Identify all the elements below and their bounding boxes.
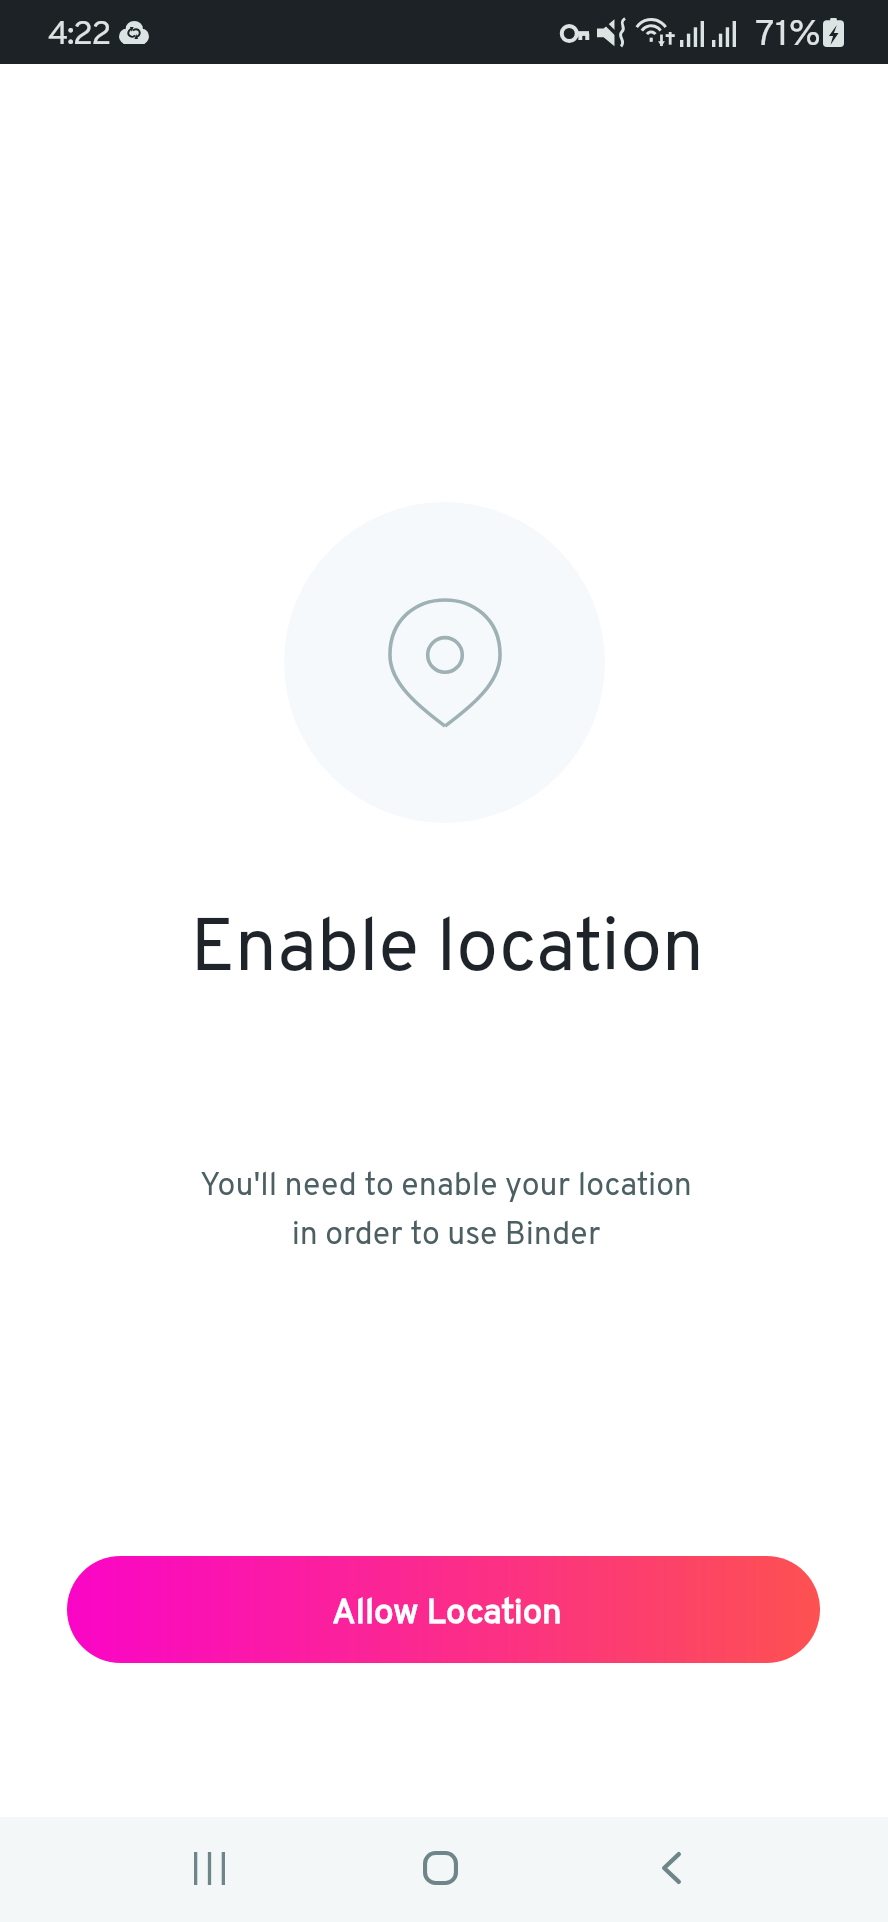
button[interactable]: Home [408,1836,472,1900]
button[interactable]: Back [639,1836,703,1900]
staticText: 4:22 [48,15,110,57]
button[interactable]: Allow Location [67,1556,820,1663]
staticText: 71% [755,12,821,59]
staticText: Allow Location [332,1592,562,1636]
button[interactable]: Recents [177,1836,241,1900]
staticText: Enable location [190,904,704,999]
staticText: You'll need to enable your location in o… [200,1167,692,1256]
